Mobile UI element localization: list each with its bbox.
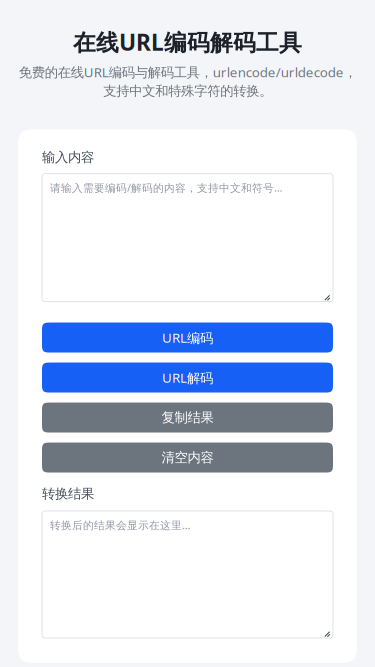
button[interactable]: URL编码	[42, 323, 333, 353]
staticText: 转换后的结果会显示在这里…	[50, 518, 190, 532]
staticText: 转换结果	[42, 486, 94, 502]
staticText: 在线URL编码解码工具	[73, 27, 302, 57]
staticText: 清空内容	[161, 449, 213, 466]
staticText: URL解码	[162, 369, 213, 386]
staticText: URL编码	[162, 329, 213, 346]
staticText: 请输入需要编码/解码的内容，支持中文和符号…	[50, 181, 282, 195]
button[interactable]: URL解码	[42, 363, 333, 393]
staticText: 免费的在线URL编码与解码工具，urlencode/urldecode，支持中文…	[18, 63, 356, 99]
staticText: 复制结果	[161, 409, 213, 426]
staticText: 输入内容	[42, 149, 94, 166]
button[interactable]: 复制结果	[42, 403, 333, 433]
button[interactable]: 清空内容	[42, 443, 333, 473]
